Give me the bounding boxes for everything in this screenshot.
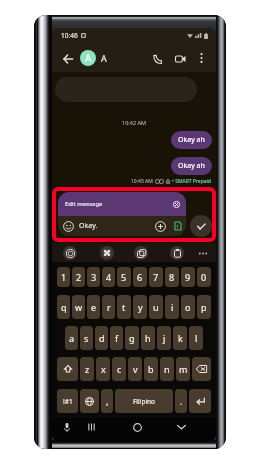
- staticText: c: [117, 363, 122, 375]
- button[interactable]: w: [72, 295, 85, 319]
- button[interactable]: Clipboard: [170, 246, 184, 260]
- button[interactable]: 2: [72, 267, 85, 287]
- staticText: o: [185, 301, 191, 313]
- button[interactable]: a: [65, 326, 78, 350]
- staticText: Okay.: [79, 221, 98, 231]
- button[interactable]: 9: [181, 267, 195, 287]
- staticText: 10:45 AM: [131, 178, 153, 185]
- staticText: 9: [185, 271, 191, 283]
- button[interactable]: 7: [149, 267, 163, 287]
- button[interactable]: 0: [197, 267, 211, 287]
- staticText: r: [107, 301, 111, 313]
- button[interactable]: m: [176, 357, 190, 381]
- button[interactable]: i: [165, 295, 179, 319]
- staticText: A: [101, 52, 107, 64]
- button[interactable]: c: [112, 357, 126, 381]
- button[interactable]: .: [175, 389, 187, 413]
- button[interactable]: [192, 357, 211, 381]
- button[interactable]: !#1: [57, 389, 78, 413]
- button[interactable]: [57, 357, 78, 381]
- button[interactable]: [80, 389, 99, 413]
- button[interactable]: Call: [148, 49, 167, 68]
- button[interactable]: More options: [193, 49, 210, 66]
- button[interactable]: x: [96, 357, 110, 381]
- staticText: 6: [137, 271, 143, 283]
- button[interactable]: l: [189, 326, 203, 350]
- staticText: y: [138, 301, 143, 313]
- staticText: A: [85, 51, 92, 65]
- button[interactable]: More: [196, 246, 210, 260]
- staticText: Okay ah: [178, 161, 205, 171]
- button[interactable]: 1: [57, 267, 70, 287]
- button[interactable]: ,: [101, 389, 113, 413]
- staticText: i: [171, 301, 174, 313]
- staticText: 1: [61, 271, 67, 283]
- button[interactable]: 8: [165, 267, 179, 287]
- staticText: 10:46: [61, 31, 78, 40]
- staticText: ,: [106, 395, 109, 407]
- staticText: 7: [153, 271, 159, 283]
- staticText: 4: [106, 271, 112, 283]
- button[interactable]: Recents: [83, 419, 99, 435]
- button[interactable]: Hide keyboard: [173, 419, 189, 435]
- button[interactable]: A: [80, 50, 96, 66]
- button[interactable]: k: [173, 326, 187, 350]
- button[interactable]: u: [149, 295, 163, 319]
- staticText: Edit message: [65, 200, 103, 208]
- button[interactable]: o: [181, 295, 195, 319]
- button[interactable]: v: [128, 357, 142, 381]
- staticText: 1: [176, 223, 180, 230]
- staticText: x: [101, 363, 106, 375]
- button[interactable]: z: [80, 357, 94, 381]
- staticText: Okay ah: [178, 135, 205, 145]
- button[interactable]: y: [133, 295, 147, 319]
- button[interactable]: Video call: [171, 49, 190, 68]
- staticText: d: [99, 332, 105, 344]
- button[interactable]: s: [80, 326, 93, 350]
- button[interactable]: Edit message: [58, 192, 186, 216]
- button[interactable]: 5: [117, 267, 131, 287]
- button[interactable]: e: [87, 295, 100, 319]
- button[interactable]: h: [141, 326, 155, 350]
- button[interactable]: 4: [102, 267, 115, 287]
- button[interactable]: g: [125, 326, 139, 350]
- button[interactable]: Home: [129, 419, 145, 435]
- staticText: 5: [121, 271, 127, 283]
- button[interactable]: Okay.: [58, 216, 186, 236]
- button[interactable]: t: [117, 295, 131, 319]
- button[interactable]: q: [57, 295, 70, 319]
- button[interactable]: r: [102, 295, 115, 319]
- staticText: u: [153, 301, 159, 313]
- staticText: w: [75, 301, 83, 313]
- button[interactable]: p: [197, 295, 211, 319]
- button[interactable]: Back: [58, 49, 77, 68]
- button[interactable]: n: [160, 357, 174, 381]
- staticText: p: [201, 301, 207, 313]
- staticText: z: [85, 363, 90, 375]
- button[interactable]: j: [157, 326, 171, 350]
- button[interactable]: d: [95, 326, 108, 350]
- button[interactable]: 6: [133, 267, 147, 287]
- button[interactable]: Voice input: [59, 419, 75, 435]
- button[interactable]: Okay ah: [171, 131, 212, 149]
- staticText: f: [115, 332, 119, 344]
- button[interactable]: 3: [87, 267, 100, 287]
- staticText: 8: [169, 271, 175, 283]
- staticText: 3: [91, 271, 97, 283]
- button[interactable]: [189, 389, 211, 413]
- staticText: 0: [201, 271, 207, 283]
- button[interactable]: GIF: [134, 246, 148, 260]
- staticText: 2: [76, 271, 82, 283]
- button[interactable]: b: [144, 357, 158, 381]
- button[interactable]: Emoji: [63, 246, 77, 260]
- staticText: e: [91, 301, 97, 313]
- button[interactable]: Filipino: [115, 389, 173, 413]
- button[interactable]: Send edited message: [190, 215, 212, 237]
- button[interactable]: Stickers: [100, 246, 114, 260]
- staticText: b: [148, 363, 154, 375]
- staticText: j: [163, 332, 166, 344]
- button[interactable]: f: [110, 326, 123, 350]
- button[interactable]: Okay ah: [171, 157, 212, 175]
- staticText: • SMART Prepaid: [172, 178, 211, 185]
- staticText: h: [145, 332, 151, 344]
